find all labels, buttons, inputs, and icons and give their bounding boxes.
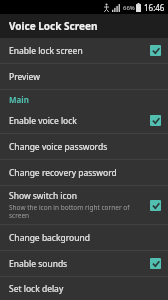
button[interactable]: Toggle setting	[150, 45, 161, 56]
staticText: Voice Lock Screen	[9, 19, 98, 33]
button[interactable]: Enable sounds	[0, 251, 168, 276]
button[interactable]: Enable voice lock	[0, 108, 168, 133]
staticText: Show the icon in bottom right corner of …	[9, 203, 144, 220]
staticText: Enable voice lock	[9, 115, 77, 127]
button[interactable]: Toggle setting	[150, 200, 161, 211]
staticText: 66%	[123, 4, 135, 12]
button[interactable]: Set lock delay	[0, 277, 168, 300]
staticText: Show switch icon	[9, 190, 78, 202]
staticText: Enable lock screen	[9, 45, 83, 57]
staticText: Enable sounds	[9, 258, 68, 270]
staticText: Change background	[9, 232, 90, 244]
button[interactable]: Preview	[0, 64, 168, 89]
button[interactable]: Change voice passwords	[0, 134, 168, 159]
staticText: 16:46	[144, 2, 165, 13]
staticText: Main	[9, 94, 29, 105]
button[interactable]: Toggle setting	[150, 258, 161, 269]
button[interactable]: Change background	[0, 225, 168, 250]
button[interactable]: Show switch icon	[0, 186, 168, 224]
button[interactable]: Enable lock screen	[0, 38, 168, 63]
button[interactable]: Toggle setting	[150, 115, 161, 126]
staticText: Change recovery password	[9, 167, 117, 179]
staticText: Change voice passwords	[9, 141, 108, 153]
button[interactable]: Change recovery password	[0, 160, 168, 185]
staticText: Preview	[9, 71, 40, 83]
staticText: Set lock delay	[9, 283, 64, 295]
